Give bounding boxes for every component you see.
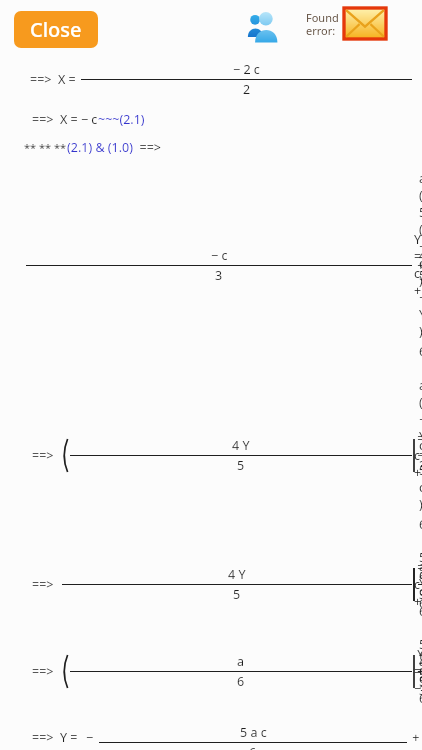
staticText: 2 bbox=[243, 81, 251, 98]
staticText: ==> Y = bbox=[32, 729, 81, 746]
staticText: ==> bbox=[133, 139, 161, 156]
button[interactable]: Found error: bbox=[306, 8, 386, 39]
staticText: 4 Y bbox=[232, 437, 250, 454]
staticText: ==> bbox=[32, 447, 60, 464]
staticText: 6 bbox=[249, 744, 257, 750]
staticText: 5 a c bbox=[240, 724, 267, 741]
staticText: − c bbox=[211, 247, 228, 264]
staticText: ==> bbox=[32, 576, 60, 593]
staticText: ==> X = − c bbox=[32, 111, 98, 128]
staticText: Close bbox=[30, 16, 82, 43]
button[interactable]: Close bbox=[14, 11, 98, 48]
staticText: ** ** ** bbox=[24, 140, 67, 155]
staticText: ==> bbox=[32, 663, 60, 680]
staticText: − 2 c bbox=[233, 61, 260, 78]
staticText: Found error: bbox=[306, 10, 339, 38]
staticText: (2.1) & (1.0) bbox=[67, 139, 133, 156]
button[interactable]: Contacts bbox=[245, 9, 281, 45]
staticText: 3 bbox=[215, 267, 223, 284]
staticText: 4 Y bbox=[228, 566, 246, 583]
staticText: 5 bbox=[237, 457, 245, 474]
staticText: ~~~(2.1) bbox=[98, 111, 145, 128]
staticText: ==> X = bbox=[30, 71, 79, 88]
staticText: − bbox=[86, 729, 97, 746]
staticText: 5 bbox=[233, 586, 241, 603]
staticText: a bbox=[237, 653, 245, 670]
staticText: 6 bbox=[237, 673, 245, 690]
